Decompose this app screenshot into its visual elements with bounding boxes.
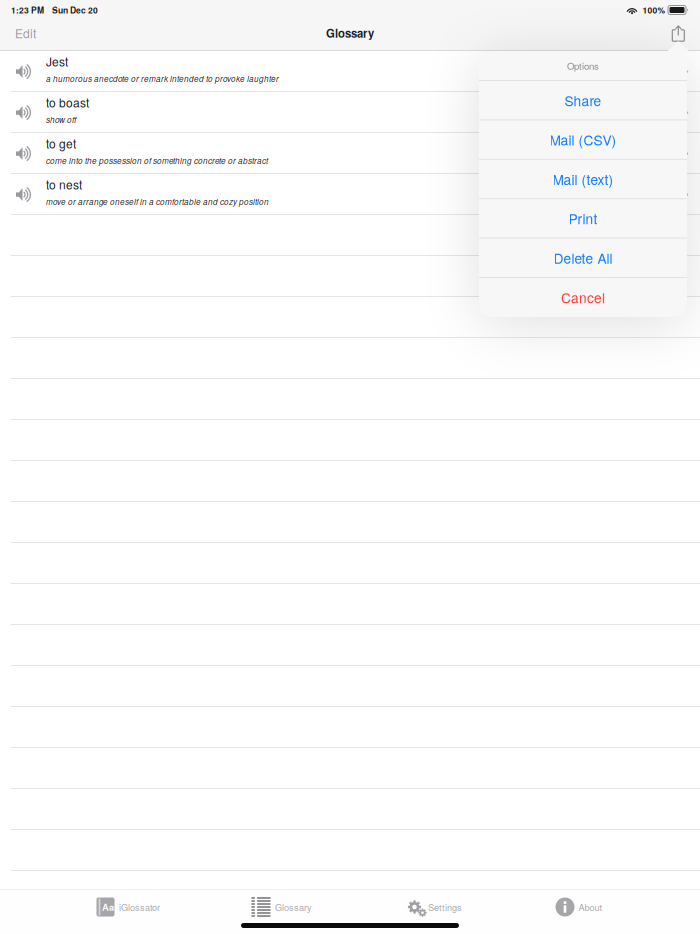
button[interactable]: Settings: [405, 896, 462, 918]
button[interactable]: Glossary: [251, 896, 312, 918]
staticText: 100%: [642, 4, 665, 16]
staticText: Share: [564, 90, 601, 110]
staticText: Mail (text): [552, 169, 613, 189]
staticText: a humorous anecdote or remark intended t…: [46, 73, 279, 84]
staticText: Jest: [46, 53, 68, 70]
staticText: to nest: [46, 176, 82, 193]
staticText: 1:23 PM: [11, 4, 44, 16]
button[interactable]: Delete All: [479, 239, 687, 277]
button[interactable]: Mail (text): [479, 160, 687, 198]
button[interactable]: to nest: [0, 174, 700, 215]
staticText: Edit: [15, 24, 36, 42]
button[interactable]: Aa: [96, 896, 160, 918]
staticText: Delete All: [553, 248, 612, 268]
staticText: Cancel: [561, 287, 605, 307]
button[interactable]: Cancel: [479, 278, 687, 316]
staticText: iGlossator: [119, 900, 160, 914]
button[interactable]: Mail (CSV): [479, 120, 687, 159]
staticText: move or arrange oneself in a comfortable…: [46, 196, 269, 207]
button[interactable]: to get: [0, 133, 700, 174]
button[interactable]: Edit: [15, 20, 49, 46]
button[interactable]: About: [555, 896, 602, 918]
staticText: come into the possession of something co…: [46, 155, 268, 166]
staticText: to boast: [46, 94, 89, 111]
staticText: Options: [567, 59, 599, 72]
staticText: Print: [568, 209, 597, 228]
button[interactable]: Share: [671, 25, 685, 43]
button[interactable]: Share: [479, 81, 687, 119]
staticText: Sun Dec 20: [52, 4, 98, 16]
staticText: About: [578, 900, 602, 914]
button[interactable]: Print: [479, 199, 687, 238]
staticText: Settings: [428, 900, 462, 914]
staticText: show off: [46, 114, 76, 125]
staticText: Aa: [102, 900, 114, 914]
staticText: Glossary: [275, 900, 312, 914]
staticText: to get: [46, 135, 76, 152]
button[interactable]: to boast: [0, 92, 700, 133]
staticText: Glossary: [326, 25, 374, 41]
staticText: Mail (CSV): [549, 130, 616, 149]
button[interactable]: Jest: [0, 51, 700, 92]
